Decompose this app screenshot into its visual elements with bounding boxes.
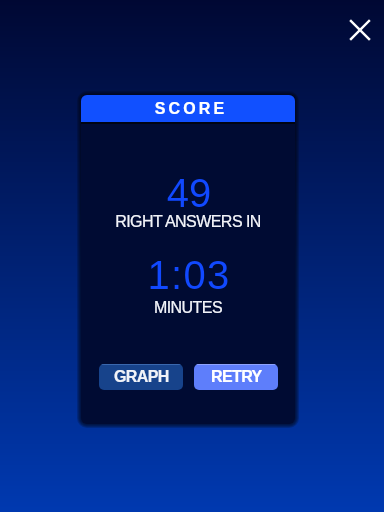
staticText: RIGHT ANSWERS IN	[81, 213, 295, 231]
button[interactable]	[81, 95, 295, 122]
staticText: 49	[82, 171, 295, 216]
button[interactable]: RETRY	[194, 364, 278, 390]
button[interactable]: GRAPH	[99, 364, 183, 390]
staticText: GRAPH	[114, 368, 169, 386]
staticText: 1:03	[82, 253, 295, 298]
staticText: RETRY	[211, 368, 262, 386]
button[interactable]: Close	[340, 10, 380, 50]
staticText: SCORE	[84, 100, 295, 118]
staticText: MINUTES	[81, 299, 295, 317]
